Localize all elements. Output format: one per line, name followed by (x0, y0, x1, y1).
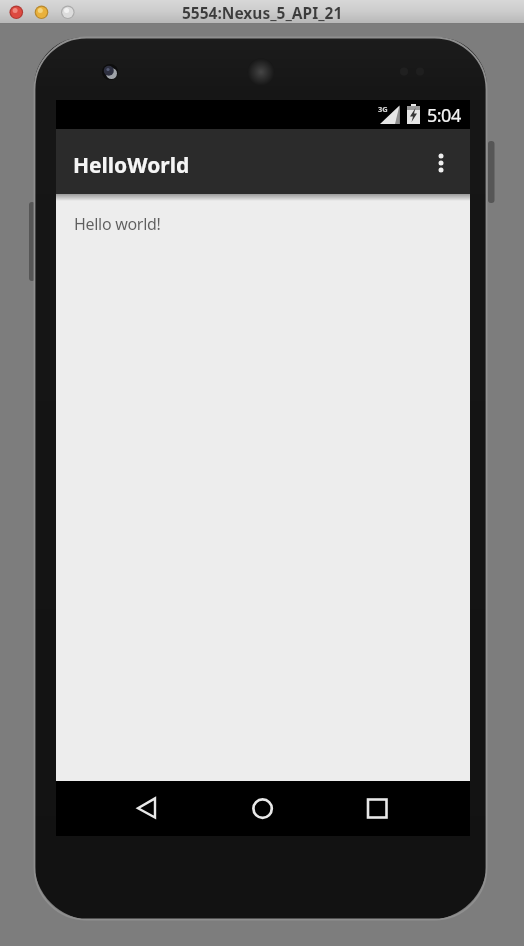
staticText: 5554:Nexus_5_API_21 (182, 2, 343, 23)
staticText: Hello world! (74, 213, 161, 235)
button[interactable] (354, 786, 398, 830)
button[interactable] (9, 5, 24, 20)
staticText: 5:04 (427, 103, 461, 128)
button[interactable] (60, 5, 75, 20)
button[interactable] (238, 786, 282, 830)
staticText: HelloWorld (73, 151, 190, 180)
staticText: 3G (378, 104, 388, 114)
button[interactable] (125, 786, 169, 830)
button[interactable] (422, 138, 460, 186)
button[interactable] (34, 5, 49, 20)
